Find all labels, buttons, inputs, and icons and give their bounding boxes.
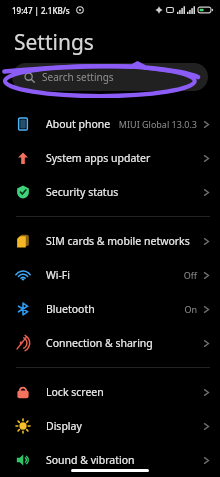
button[interactable]: Search settings bbox=[12, 63, 208, 91]
staticText: Lock screen bbox=[46, 385, 104, 399]
staticText: 19:47 | 2.1KB/s bbox=[12, 5, 70, 16]
staticText: Connection & sharing bbox=[46, 336, 153, 350]
staticText: SIM cards & mobile networks bbox=[46, 234, 190, 248]
button[interactable]: Display bbox=[0, 409, 220, 443]
button[interactable]: Sound & vibration bbox=[0, 443, 220, 477]
button[interactable]: About phone bbox=[0, 107, 220, 141]
button[interactable]: Connection & sharing bbox=[0, 326, 220, 360]
button[interactable]: Lock screen bbox=[0, 375, 220, 409]
button[interactable]: System apps updater bbox=[0, 141, 220, 175]
staticText: Off bbox=[183, 269, 197, 281]
staticText: System apps updater bbox=[46, 151, 151, 165]
staticText: On bbox=[184, 303, 197, 315]
button[interactable]: SIM cards & mobile networks bbox=[0, 224, 220, 258]
staticText: Search settings bbox=[42, 70, 114, 84]
staticText: Sound & vibration bbox=[46, 453, 135, 467]
button[interactable]: Bluetooth bbox=[0, 292, 220, 326]
staticText: Settings bbox=[14, 28, 94, 57]
staticText: MIUI Global 13.0.3 bbox=[118, 118, 197, 130]
staticText: Display bbox=[46, 419, 82, 433]
staticText: About phone bbox=[46, 117, 111, 131]
staticText: Bluetooth bbox=[46, 302, 95, 316]
button[interactable]: Security status bbox=[0, 175, 220, 209]
button[interactable]: Wi-Fi bbox=[0, 258, 220, 292]
staticText: Security status bbox=[46, 185, 119, 199]
staticText: Wi-Fi bbox=[46, 268, 71, 282]
